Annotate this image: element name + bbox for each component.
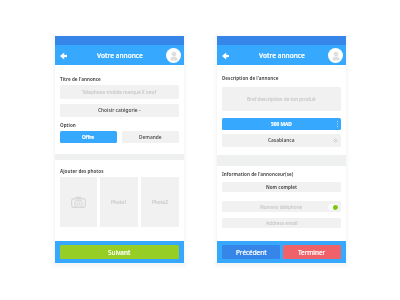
staticText: Choisir catégorie - (98, 107, 141, 114)
staticText: Photo2 (152, 199, 168, 205)
staticText: Offre (82, 134, 95, 141)
button[interactable]: Address email (222, 218, 341, 228)
button[interactable]: Suivant (60, 245, 179, 259)
button[interactable]: Choisir catégorie - (60, 104, 179, 117)
button[interactable]: Numero téléphone (222, 201, 341, 212)
button[interactable]: Back (57, 49, 70, 62)
button[interactable]: Back (219, 49, 232, 62)
staticText: 500 MAD (271, 121, 292, 128)
staticText: Photo1 (111, 199, 127, 205)
button[interactable]: Précédent (222, 245, 280, 259)
staticText: Casablanca (268, 137, 295, 144)
staticText: Votre annonce (259, 51, 305, 60)
button[interactable]: Take photo (60, 177, 97, 227)
button[interactable]: Profile (166, 48, 181, 63)
button[interactable]: Demande (122, 131, 179, 143)
staticText: Information de l'annonceur(se) (222, 171, 294, 177)
staticText: Demande (139, 134, 162, 141)
staticText: Nom complet (266, 184, 298, 190)
button[interactable]: Profile (328, 48, 343, 63)
staticText: Numero téléphone (260, 204, 303, 210)
button[interactable]: Photo1 (100, 177, 138, 227)
staticText: Suivant (108, 248, 131, 257)
button[interactable]: Casablanca (222, 134, 341, 147)
staticText: Précédent (236, 248, 267, 257)
button[interactable]: Nom complet (222, 182, 341, 192)
button[interactable]: 500 MAD (222, 118, 341, 130)
staticText: Option (60, 122, 76, 128)
button[interactable]: Offre (60, 131, 117, 143)
staticText: Votre annonce (97, 51, 143, 60)
staticText: Description de l'annonce (222, 75, 279, 81)
staticText: Address email (266, 220, 298, 226)
staticText: Telephone mobile marque X neuf (82, 89, 157, 95)
button[interactable]: Photo2 (141, 177, 179, 227)
button[interactable]: Telephone mobile marque X neuf (60, 85, 179, 99)
button[interactable]: Bref description de ton produit (222, 87, 341, 111)
staticText: Titre de l'annonce (60, 76, 101, 82)
button[interactable]: Terminer (283, 245, 341, 259)
staticText: Terminer (298, 248, 326, 257)
staticText: Bref description de ton produit (247, 96, 316, 102)
staticText: Ajouter des photos (60, 168, 104, 174)
